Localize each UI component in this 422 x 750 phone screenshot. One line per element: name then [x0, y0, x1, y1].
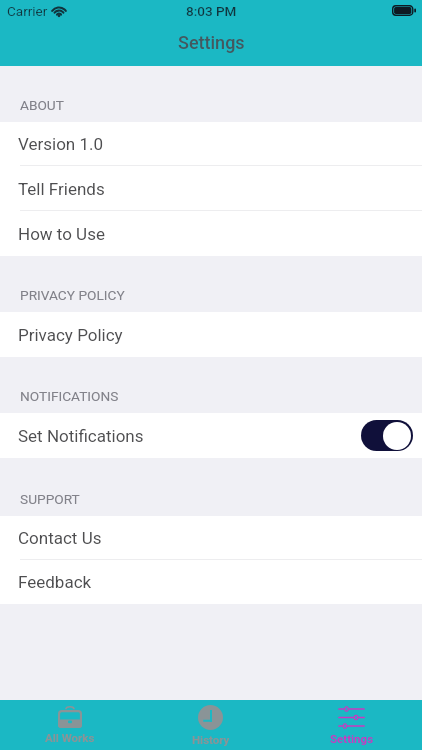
staticText: Set Notifications — [18, 426, 144, 446]
button[interactable]: Contact Us — [0, 516, 422, 560]
staticText: NOTIFICATIONS — [20, 388, 119, 404]
button[interactable]: Settings — [281, 700, 422, 750]
button[interactable]: Privacy Policy — [0, 312, 422, 357]
staticText: Tell Friends — [18, 179, 105, 199]
button[interactable]: Tell Friends — [0, 166, 422, 211]
staticText: 8:03 PM — [186, 3, 237, 19]
staticText: Carrier — [7, 3, 48, 19]
staticText: All Works — [45, 731, 95, 744]
button[interactable]: How to Use — [0, 211, 422, 256]
button[interactable]: Feedback — [0, 560, 422, 604]
button[interactable]: All Works — [0, 700, 140, 750]
button[interactable]: History — [140, 700, 281, 750]
staticText: Settings — [178, 32, 245, 53]
staticText: Settings — [330, 732, 374, 745]
staticText: ABOUT — [20, 97, 64, 113]
button[interactable]: Version 1.0 — [0, 122, 422, 166]
button[interactable]: Set Notifications toggle — [361, 420, 413, 451]
staticText: History — [192, 733, 230, 746]
staticText: How to Use — [18, 224, 105, 244]
staticText: Privacy Policy — [18, 325, 123, 345]
staticText: SUPPORT — [20, 491, 80, 507]
button[interactable]: Set Notifications — [0, 413, 422, 458]
staticText: Version 1.0 — [18, 134, 104, 154]
staticText: Contact Us — [18, 528, 102, 548]
staticText: PRIVACY POLICY — [20, 287, 125, 303]
staticText: Feedback — [18, 572, 92, 592]
